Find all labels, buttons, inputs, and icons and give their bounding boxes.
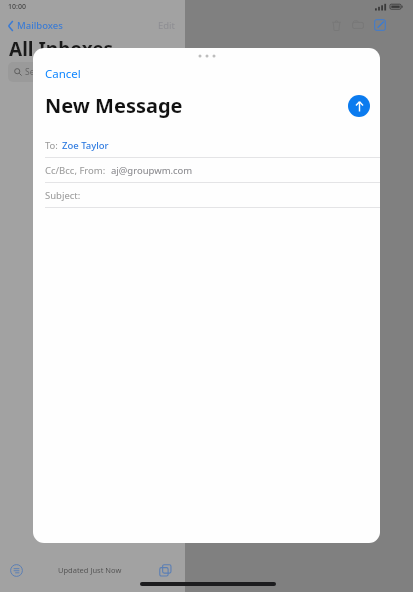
button[interactable]: New message: [155, 560, 175, 580]
staticText: Edit: [158, 19, 176, 31]
staticText: To:: [45, 139, 58, 152]
staticText: 10:00: [8, 2, 26, 12]
staticText: Mailboxes: [17, 19, 63, 32]
staticText: New Message: [45, 92, 183, 119]
button[interactable]: Filter: [6, 560, 26, 580]
staticText: Zoe Taylor: [62, 139, 109, 152]
button[interactable]: Search: [8, 62, 176, 82]
button[interactable]: Mailboxes: [6, 19, 65, 32]
staticText: Search: [25, 66, 52, 78]
button[interactable]: Subject:: [33, 183, 380, 207]
button[interactable]: To:: [33, 133, 380, 157]
staticText: aj@groupwm.com: [111, 164, 193, 177]
button[interactable]: Edit: [155, 16, 179, 34]
button[interactable]: Cancel: [42, 64, 84, 84]
staticText: All Inboxes: [9, 36, 114, 62]
button[interactable]: Cc/Bcc, From:: [33, 158, 380, 182]
staticText: Updated Just Now: [58, 565, 122, 575]
button[interactable]: Send: [348, 95, 370, 117]
button[interactable]: Compose: [369, 16, 391, 34]
staticText: Cc/Bcc, From:: [45, 164, 106, 177]
staticText: Subject:: [45, 189, 81, 202]
staticText: Cancel: [45, 66, 81, 82]
